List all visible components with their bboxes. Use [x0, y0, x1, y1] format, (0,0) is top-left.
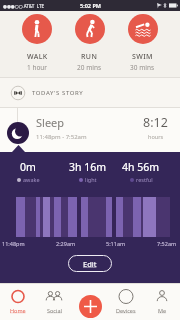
- button[interactable]: Edit: [68, 255, 112, 272]
- staticText: ●●●○○ AT&T LTE: [3, 3, 44, 9]
- staticText: 5:11am: [106, 240, 126, 247]
- staticText: 30 mins: [130, 63, 155, 72]
- staticText: SWIM: [132, 52, 153, 62]
- button[interactable]: Me: [144, 283, 180, 320]
- staticText: Edit: [83, 259, 97, 269]
- staticText: 8:12: [143, 114, 168, 131]
- staticText: 5:02 PM: [80, 2, 101, 9]
- button[interactable]: WALK: [11, 11, 63, 77]
- staticText: Social: [47, 307, 62, 314]
- staticText: WALK: [27, 52, 48, 62]
- staticText: light: [85, 176, 97, 183]
- staticText: 11:48pm - 7:52am: [36, 133, 87, 141]
- staticText: RUN: [81, 52, 98, 62]
- staticText: Me: [158, 307, 167, 314]
- staticText: 2:29am: [56, 240, 76, 247]
- staticText: Devices: [116, 307, 136, 314]
- button[interactable]: Sleep: [0, 108, 180, 152]
- staticText: 4h 56m: [122, 160, 160, 174]
- staticText: 7:52am: [157, 240, 177, 247]
- staticText: 1 hour: [27, 63, 48, 72]
- staticText: 11:48pm: [2, 240, 25, 247]
- staticText: TODAY'S STORY: [32, 89, 84, 97]
- staticText: restful: [136, 176, 153, 183]
- staticText: Sleep: [36, 115, 65, 130]
- button[interactable]: Devices: [108, 283, 144, 320]
- staticText: Home: [10, 307, 26, 314]
- button[interactable]: Home: [0, 283, 36, 320]
- button[interactable]: Social: [36, 283, 72, 320]
- button[interactable]: [72, 283, 108, 320]
- button[interactable]: TODAY'S STORY: [0, 78, 180, 107]
- staticText: hours: [148, 133, 164, 140]
- staticText: 0m: [20, 160, 36, 174]
- button[interactable]: RUN: [63, 11, 116, 77]
- button[interactable]: SWIM: [116, 11, 169, 77]
- staticText: 3h 16m: [69, 160, 107, 174]
- staticText: awake: [23, 176, 40, 183]
- staticText: 20 mins: [77, 63, 102, 72]
